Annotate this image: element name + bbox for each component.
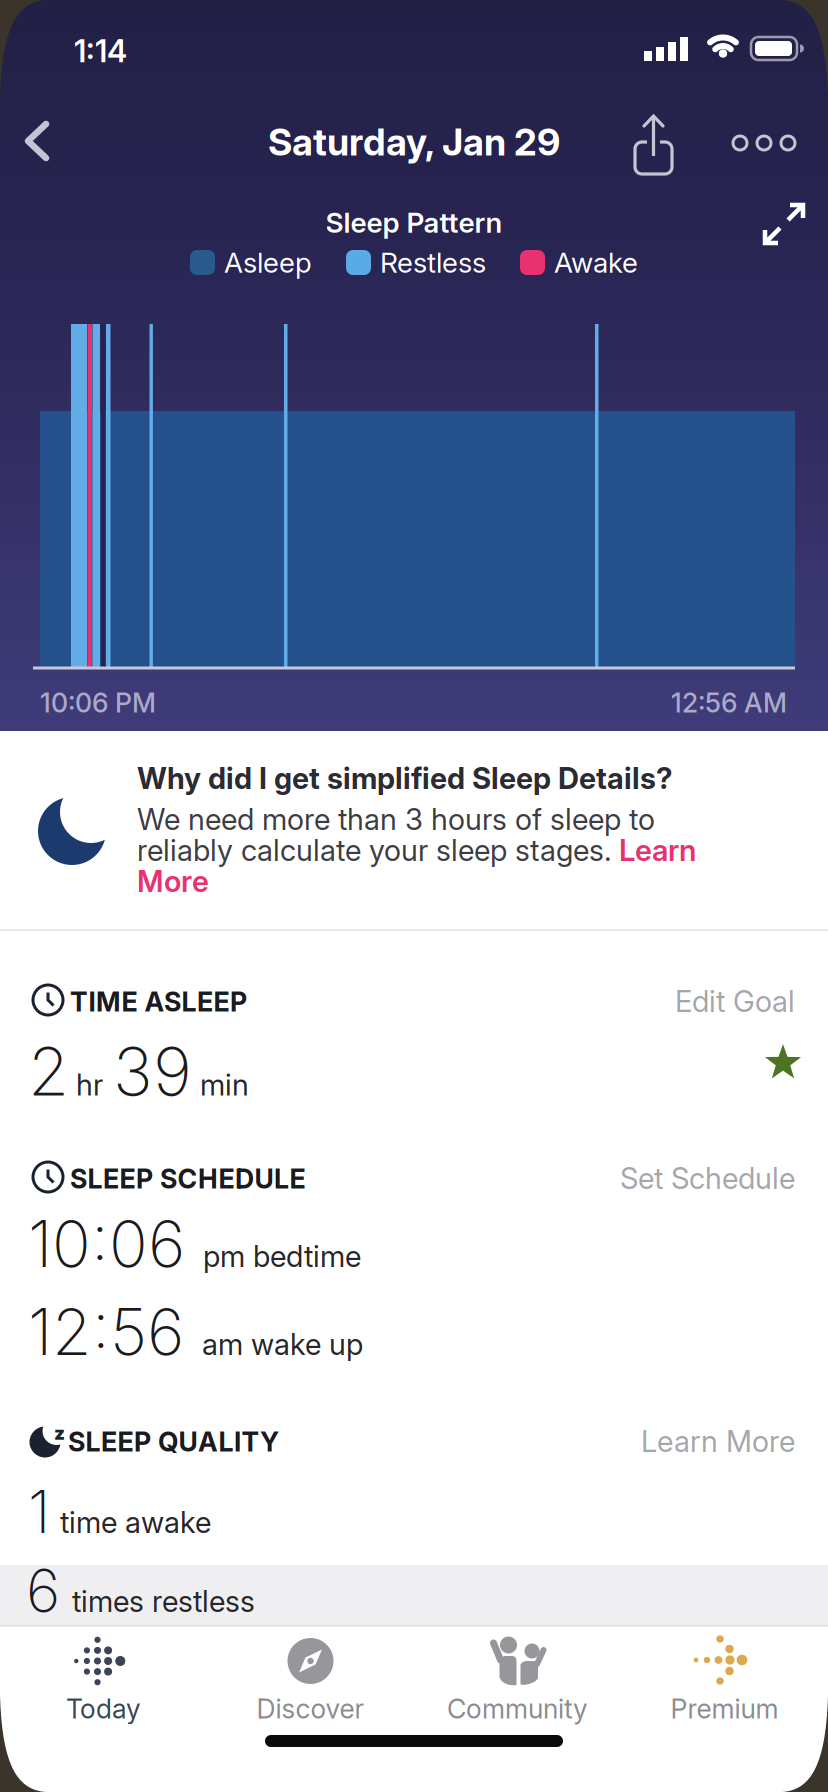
staticText: hr bbox=[76, 1068, 103, 1102]
staticText: 39 bbox=[113, 1032, 192, 1111]
staticText: SLEEP QUALITY bbox=[68, 1426, 279, 1457]
staticText: times restless bbox=[72, 1584, 255, 1619]
staticText: Restless bbox=[380, 246, 486, 279]
staticText: Set Schedule bbox=[620, 1161, 795, 1196]
staticText: 10:06 bbox=[28, 1206, 185, 1281]
staticText: Today bbox=[66, 1693, 141, 1724]
staticText: 10:06 PM bbox=[40, 687, 156, 718]
button[interactable]: Today bbox=[0, 1638, 207, 1724]
staticText: 1:14 bbox=[74, 33, 127, 69]
button[interactable]: Community bbox=[414, 1638, 621, 1724]
staticText: Learn More bbox=[641, 1424, 795, 1459]
staticText: 12:56 bbox=[28, 1294, 184, 1369]
staticText: 2 bbox=[28, 1032, 69, 1111]
staticText: am wake up bbox=[202, 1327, 363, 1362]
button[interactable]: Share bbox=[635, 113, 672, 174]
staticText: Why did I get simplified Sleep Details? bbox=[137, 761, 673, 796]
staticText: More bbox=[137, 864, 209, 899]
staticText: 1 bbox=[28, 1477, 50, 1546]
staticText: Learn bbox=[619, 833, 696, 868]
staticText: Sleep Pattern bbox=[325, 206, 502, 239]
staticText: Premium bbox=[670, 1693, 778, 1724]
staticText: 12:56 AM bbox=[671, 687, 787, 718]
button[interactable]: Learn More bbox=[641, 1424, 795, 1459]
staticText: pm bedtime bbox=[203, 1239, 361, 1274]
staticText: time awake bbox=[60, 1505, 211, 1540]
button[interactable]: More bbox=[733, 123, 795, 163]
staticText: Saturday, Jan 29 bbox=[268, 120, 560, 164]
button[interactable]: Premium bbox=[621, 1638, 828, 1724]
staticText: Edit Goal bbox=[675, 984, 795, 1019]
button[interactable]: Expand bbox=[763, 203, 805, 245]
staticText: SLEEP SCHEDULE bbox=[70, 1163, 305, 1194]
staticText: TIME ASLEEP bbox=[70, 986, 247, 1017]
staticText: Asleep bbox=[224, 246, 312, 279]
staticText: Awake bbox=[554, 246, 638, 279]
button[interactable]: Back bbox=[25, 121, 65, 161]
staticText: We need more than 3 hours of sleep to bbox=[137, 802, 655, 837]
button[interactable]: Set Schedule bbox=[620, 1161, 795, 1196]
staticText: min bbox=[200, 1068, 249, 1102]
staticText: z bbox=[54, 1422, 65, 1444]
staticText: reliably calculate your sleep stages. bbox=[137, 833, 612, 868]
staticText: Discover bbox=[256, 1693, 364, 1724]
staticText: Community bbox=[447, 1693, 588, 1724]
button[interactable]: Edit Goal bbox=[675, 984, 795, 1019]
button[interactable]: Discover bbox=[207, 1638, 414, 1724]
staticText: 6 bbox=[26, 1556, 60, 1625]
